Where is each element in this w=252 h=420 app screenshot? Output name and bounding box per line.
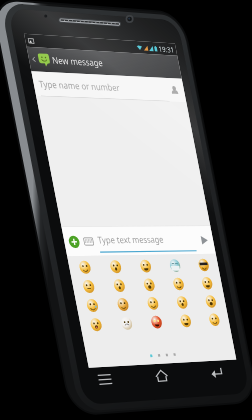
staticText: Type name or number [12, 84, 201, 109]
button[interactable]: Emoji keyboard [41, 386, 71, 416]
staticText: New message [53, 36, 171, 61]
button[interactable]: Navigate up [0, 25, 252, 72]
staticText: Type text message [78, 386, 236, 411]
other: Navigate up [5, 42, 18, 55]
